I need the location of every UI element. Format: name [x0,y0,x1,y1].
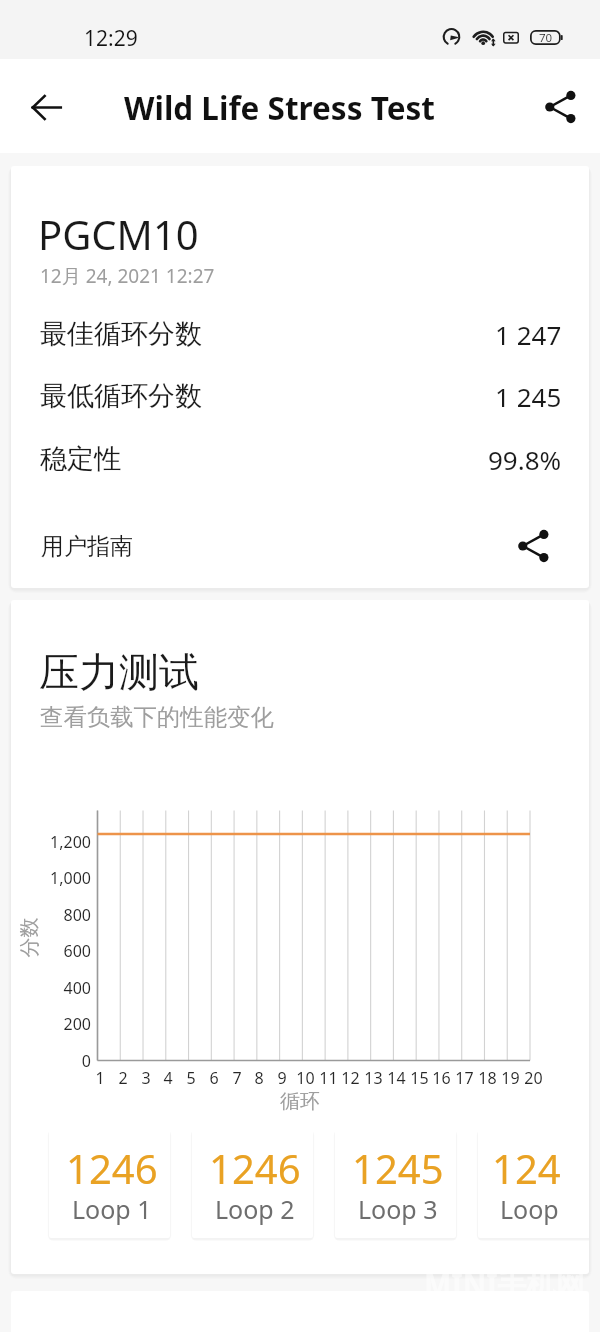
button[interactable]: 用户指南 [41,514,556,578]
staticText: 17 [455,1067,474,1089]
staticText: 5 [186,1067,196,1089]
staticText: 1 247 [495,317,562,352]
staticText: 99.8% [488,442,562,477]
staticText: 4 [163,1067,173,1089]
staticText: 2 [118,1067,128,1089]
staticText: 19 [501,1067,520,1089]
button[interactable]: 1246 [49,1129,170,1238]
staticText: 压力测试 [39,647,199,697]
staticText: 最佳循环分数 [40,317,202,351]
staticText: 用户指南 [41,532,133,561]
staticText: 16 [432,1067,451,1089]
staticText: 1 245 [495,379,562,414]
staticText: 18 [478,1067,497,1089]
staticText: 20 [524,1067,543,1089]
staticText: 8 [254,1067,264,1089]
staticText: 11 [319,1067,338,1089]
staticText: Loop 2 [215,1192,295,1226]
staticText: 1,200 [50,831,91,853]
staticText: 800 [63,904,91,926]
staticText: 13 [364,1067,383,1089]
staticText: PGCM10 [38,207,199,261]
staticText: 12:29 [84,24,138,53]
staticText: 1 [95,1067,105,1089]
staticText: 最低循环分数 [40,379,202,413]
staticText: Loop [500,1192,559,1226]
staticText: 6 [209,1067,219,1089]
staticText: 124 [492,1141,561,1195]
staticText: 600 [63,940,91,962]
button[interactable]: Share [534,80,588,134]
staticText: 分数 [16,917,41,957]
staticText: 稳定性 [40,442,121,476]
staticText: 10 [296,1067,315,1089]
staticText: 3 [141,1067,151,1089]
staticText: 1245 [352,1141,444,1195]
staticText: 14 [387,1067,406,1089]
staticText: 1,000 [50,867,91,889]
staticText: 12 [341,1067,360,1089]
button[interactable]: 1246 [192,1129,313,1238]
staticText: MINI手机网 [424,1264,585,1304]
staticText: Loop 3 [358,1192,438,1226]
staticText: Loop 1 [72,1192,152,1226]
button[interactable]: 124 [478,1129,589,1238]
button[interactable]: Back [18,79,74,135]
staticText: 查看负载下的性能变化 [40,702,274,731]
staticText: 7 [232,1067,242,1089]
staticText: 70 [539,30,553,45]
staticText: 200 [63,1013,91,1035]
staticText: 1246 [66,1141,158,1195]
staticText: 0 [81,1050,91,1072]
staticText: 12月 24, 2021 12:27 [40,263,215,289]
staticText: 1246 [209,1141,301,1195]
staticText: 15 [410,1067,429,1089]
button[interactable]: Share result [512,524,556,568]
staticText: 400 [63,977,91,999]
staticText: 循环 [280,1089,320,1114]
staticText: 9 [277,1067,287,1089]
staticText: Wild Life Stress Test [124,86,435,129]
button[interactable]: 1245 [335,1129,456,1238]
